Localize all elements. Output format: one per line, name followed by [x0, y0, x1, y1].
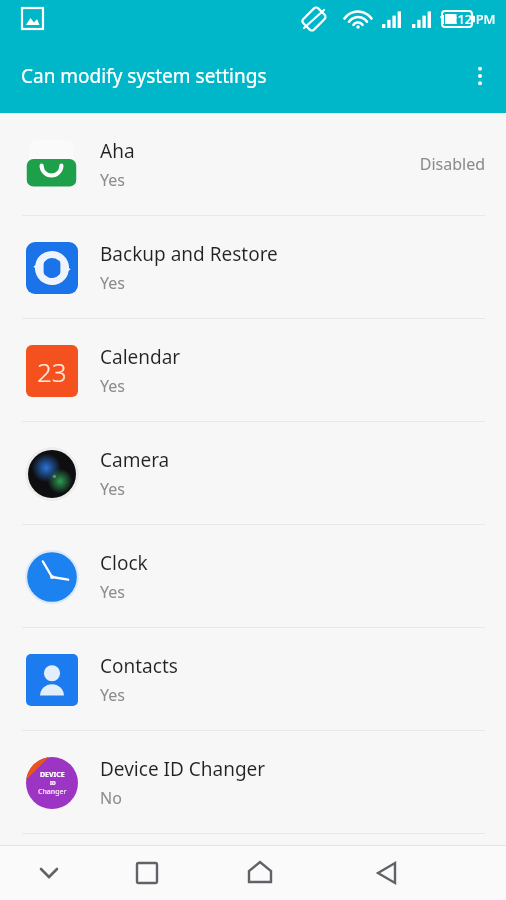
staticText: Yes — [100, 169, 125, 191]
staticText: Camera — [100, 447, 170, 473]
button[interactable]: Home — [196, 846, 324, 900]
staticText: Clock — [100, 550, 148, 576]
staticText: Can modify system settings — [21, 63, 267, 89]
button[interactable]: 23 — [0, 319, 506, 421]
button[interactable]: Clock — [0, 525, 506, 627]
staticText: Device ID Changer — [100, 756, 266, 782]
button[interactable]: Hide keyboard — [0, 846, 98, 900]
staticText: Calendar — [100, 344, 181, 370]
staticText: Yes — [100, 581, 125, 603]
staticText: Aha — [100, 138, 135, 164]
staticText: Yes — [100, 478, 125, 500]
button[interactable]: Recent apps — [98, 846, 196, 900]
button[interactable]: Contacts — [0, 628, 506, 730]
staticText: Yes — [100, 272, 125, 294]
staticText: 23 — [37, 354, 67, 389]
staticText: ID — [50, 780, 56, 787]
button[interactable]: Camera — [0, 422, 506, 524]
staticText: Disabled — [419, 153, 485, 175]
staticText: Yes — [100, 375, 125, 397]
staticText: Changer — [38, 787, 67, 797]
button[interactable]: Back — [324, 846, 452, 900]
button[interactable]: DEVICE — [0, 731, 506, 833]
button[interactable]: Aha — [0, 113, 506, 215]
staticText: No — [100, 787, 122, 809]
staticText: 11:12 PM — [439, 10, 496, 28]
staticText: Contacts — [100, 653, 178, 679]
staticText: DEVICE — [40, 770, 65, 780]
button[interactable]: More options — [456, 52, 504, 100]
button[interactable]: Backup and Restore — [0, 216, 506, 318]
staticText: Backup and Restore — [100, 241, 278, 267]
staticText: Yes — [100, 684, 125, 706]
